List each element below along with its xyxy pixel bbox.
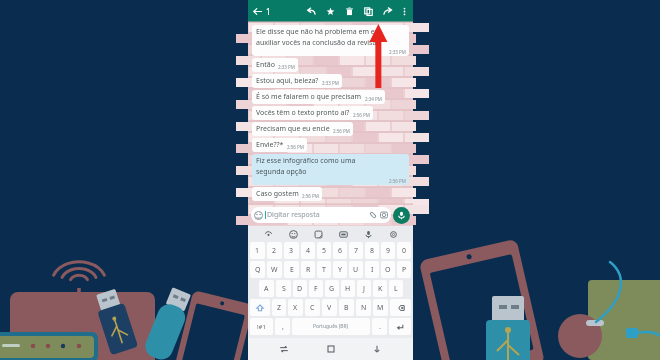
staticText: 7 <box>354 246 359 256</box>
button[interactable]: Attach <box>369 211 377 219</box>
button[interactable]: Emoji <box>286 227 300 241</box>
button[interactable]: 4 <box>301 242 315 259</box>
staticText: S <box>282 284 286 294</box>
button[interactable]: G <box>325 280 339 297</box>
button[interactable]: E <box>284 261 299 278</box>
button[interactable]: Fiz esse infográfico como uma <box>252 154 409 185</box>
staticText: 2:33 PM <box>322 80 339 86</box>
button[interactable]: 2 <box>267 242 282 259</box>
staticText: 9 <box>386 246 391 256</box>
staticText: 0 <box>402 246 407 256</box>
button[interactable]: 1 <box>250 242 265 259</box>
button[interactable]: Enter <box>389 318 411 335</box>
staticText: I <box>371 265 374 275</box>
button[interactable]: !#1 <box>250 318 273 335</box>
staticText: D <box>297 284 303 294</box>
button[interactable]: Ele disse que não há problema em eu <box>252 25 409 56</box>
button[interactable]: 6 <box>333 242 347 259</box>
staticText: H <box>345 284 351 294</box>
button[interactable]: M <box>373 299 388 316</box>
button[interactable]: Back <box>248 2 266 20</box>
staticText: Português (BR) <box>313 323 349 330</box>
button[interactable]: A <box>259 280 274 297</box>
button[interactable]: D <box>293 280 307 297</box>
button[interactable]: W <box>267 261 282 278</box>
button[interactable]: C <box>305 299 320 316</box>
button[interactable]: 9 <box>381 242 395 259</box>
button[interactable]: 3 <box>284 242 299 259</box>
staticText: B <box>344 303 349 313</box>
button[interactable]: O <box>381 261 395 278</box>
button[interactable]: Português (BR) <box>292 318 370 335</box>
button[interactable]: Backspace <box>390 299 411 316</box>
button[interactable]: B <box>339 299 354 316</box>
staticText: 2:56 PM <box>302 193 319 199</box>
staticText: Fiz esse infográfico como uma <box>256 156 356 166</box>
button[interactable]: R <box>301 261 315 278</box>
button[interactable]: Stickers <box>311 227 325 241</box>
staticText: Vocês têm o texto pronto aí? <box>256 108 350 118</box>
button[interactable]: P <box>397 261 411 278</box>
staticText: Precisam que eu encie <box>256 124 330 134</box>
button[interactable]: 8 <box>365 242 379 259</box>
button[interactable]: U <box>349 261 363 278</box>
button[interactable]: Digitar resposta <box>251 207 391 223</box>
button[interactable]: J <box>357 280 371 297</box>
button[interactable]: Settings <box>386 227 400 241</box>
button[interactable]: Precisam que eu encie <box>252 122 353 136</box>
staticText: Caso gostem <box>256 189 299 199</box>
button[interactable]: Caso gostem <box>252 187 322 201</box>
button[interactable]: Envie??* <box>252 138 307 152</box>
staticText: F <box>314 284 318 294</box>
button[interactable]: Forward <box>379 3 395 19</box>
button[interactable]: N <box>356 299 371 316</box>
button[interactable]: É só me falarem o que precisam <box>252 90 385 104</box>
button[interactable]: Vocês têm o texto pronto aí? <box>252 106 373 120</box>
staticText: Y <box>338 265 342 275</box>
staticText: É só me falarem o que precisam <box>256 92 362 102</box>
button[interactable]: 7 <box>349 242 363 259</box>
button[interactable]: X <box>288 299 303 316</box>
button[interactable]: S <box>276 280 291 297</box>
button[interactable]: , <box>275 318 290 335</box>
button[interactable]: Shift <box>250 299 270 316</box>
button[interactable]: H <box>341 280 355 297</box>
button[interactable]: Y <box>333 261 347 278</box>
button[interactable]: Z <box>272 299 286 316</box>
staticText: A <box>264 284 269 294</box>
button[interactable]: 5 <box>317 242 331 259</box>
staticText: 2:33 PM <box>389 49 406 55</box>
button[interactable]: Microphone <box>361 227 375 241</box>
button[interactable]: V <box>322 299 337 316</box>
button[interactable]: L <box>389 280 403 297</box>
staticText: . <box>379 322 381 332</box>
button[interactable]: I <box>365 261 379 278</box>
button[interactable]: T <box>317 261 331 278</box>
button[interactable]: Star <box>322 3 338 19</box>
button[interactable]: F <box>309 280 323 297</box>
button[interactable]: GIF <box>336 227 350 241</box>
staticText: C <box>310 303 315 313</box>
staticText: 2:33 PM <box>278 64 295 70</box>
button[interactable]: Voice message <box>393 207 410 224</box>
button[interactable]: K <box>373 280 387 297</box>
button[interactable]: Hide keyboard <box>367 339 387 359</box>
staticText: U <box>353 265 359 275</box>
button[interactable]: Q <box>250 261 265 278</box>
staticText: K <box>378 284 383 294</box>
button[interactable]: Camera <box>380 211 388 219</box>
staticText: 5 <box>322 246 327 256</box>
button[interactable]: Delete <box>341 3 357 19</box>
button[interactable]: Home <box>321 339 341 359</box>
button[interactable]: . <box>372 318 387 335</box>
button[interactable]: Então <box>252 58 298 72</box>
button[interactable]: Recents <box>274 339 294 359</box>
button[interactable]: More options <box>397 2 411 20</box>
staticText: !#1 <box>257 323 266 331</box>
button[interactable]: 0 <box>397 242 411 259</box>
button[interactable]: Voice typing <box>261 227 275 241</box>
button[interactable]: Reply <box>303 3 319 19</box>
button[interactable]: Copy <box>360 3 376 19</box>
staticText: P <box>402 265 407 275</box>
button[interactable]: Estou aqui, beleza? <box>252 74 342 88</box>
